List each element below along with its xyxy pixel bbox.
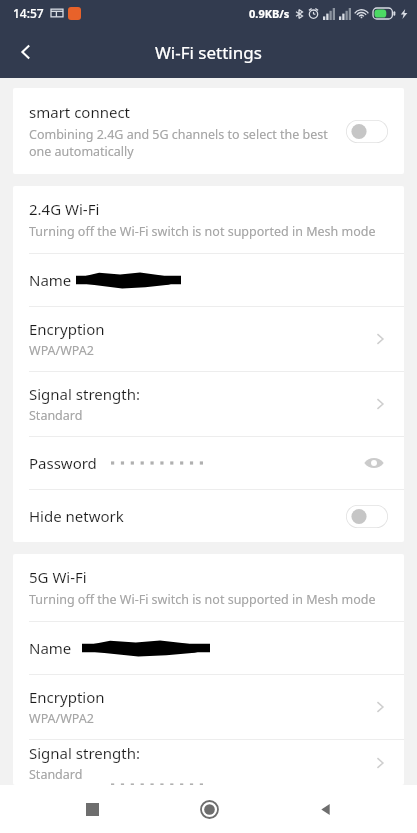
button[interactable]: Recent apps: [68, 785, 116, 833]
staticText: Wi-Fi settings: [155, 41, 262, 64]
staticText: smart connect: [29, 102, 131, 122]
button[interactable]: Password: [13, 437, 404, 489]
staticText: Signal strength:: [29, 743, 140, 763]
button[interactable]: Toggle: [346, 120, 388, 143]
button[interactable]: Name: [13, 622, 404, 674]
button[interactable]: Encryption: [13, 307, 404, 371]
button[interactable]: Encryption: [13, 675, 404, 739]
button[interactable]: Back: [301, 785, 349, 833]
staticText: Password: [29, 453, 97, 473]
staticText: Turning off the Wi-Fi switch is not supp…: [29, 223, 376, 240]
staticText: Standard: [29, 407, 83, 424]
button[interactable]: Back: [0, 26, 52, 78]
button[interactable]: Signal strength:: [13, 372, 404, 436]
staticText: Encryption: [29, 319, 105, 339]
button[interactable]: Show password: [360, 449, 388, 477]
button[interactable]: Hide network: [13, 490, 404, 542]
staticText: Turning off the Wi-Fi switch is not supp…: [29, 591, 376, 608]
staticText: Standard: [29, 766, 83, 783]
button[interactable]: Name: [13, 254, 404, 306]
staticText: 5G Wi-Fi: [29, 567, 87, 587]
staticText: Name: [29, 638, 72, 658]
button[interactable]: Home: [185, 785, 233, 833]
staticText: WPA/WPA2: [29, 342, 94, 359]
button[interactable]: Toggle: [346, 505, 388, 528]
staticText: WPA/WPA2: [29, 710, 94, 727]
staticText: 0.9KB/s: [249, 6, 290, 21]
staticText: Combining 2.4G and 5G channels to select…: [29, 126, 336, 160]
staticText: 2.4G Wi-Fi: [29, 199, 100, 219]
button[interactable]: Signal strength:: [13, 740, 404, 785]
staticText: Encryption: [29, 687, 105, 707]
staticText: Hide network: [29, 506, 124, 526]
staticText: Signal strength:: [29, 384, 140, 404]
staticText: Name: [29, 270, 72, 290]
button[interactable]: smart connect: [13, 88, 404, 174]
staticText: 14:57: [13, 5, 44, 21]
